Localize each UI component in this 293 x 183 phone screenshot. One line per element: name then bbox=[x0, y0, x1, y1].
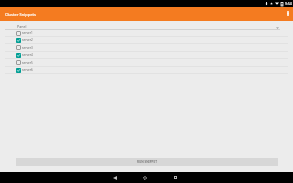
button[interactable]: server4 bbox=[5, 52, 288, 58]
staticText: server2 bbox=[22, 38, 33, 42]
button[interactable]: RUN SNIPPET bbox=[16, 158, 278, 166]
button[interactable]: Home bbox=[131, 172, 159, 183]
staticText: server1 bbox=[22, 31, 33, 35]
staticText: server4 bbox=[22, 53, 33, 57]
button[interactable]: server5 bbox=[5, 59, 288, 66]
button[interactable]: server3 bbox=[5, 44, 288, 51]
staticText: Cluster Snippets bbox=[5, 12, 36, 17]
staticText: server3 bbox=[22, 46, 33, 50]
button[interactable]: More options bbox=[283, 10, 293, 16]
button[interactable]: server1 bbox=[5, 30, 288, 36]
button[interactable]: server6 bbox=[5, 67, 288, 73]
staticText: server6 bbox=[22, 68, 33, 72]
button[interactable]: server2 bbox=[5, 37, 288, 43]
button[interactable]: Panel bbox=[5, 23, 288, 29]
staticText: Panel bbox=[17, 24, 27, 29]
staticText: 9:54 bbox=[285, 1, 292, 6]
staticText: RUN SNIPPET bbox=[137, 160, 157, 164]
button[interactable]: Back bbox=[101, 172, 129, 183]
button[interactable]: Recents bbox=[161, 172, 189, 183]
staticText: server5 bbox=[22, 61, 33, 65]
